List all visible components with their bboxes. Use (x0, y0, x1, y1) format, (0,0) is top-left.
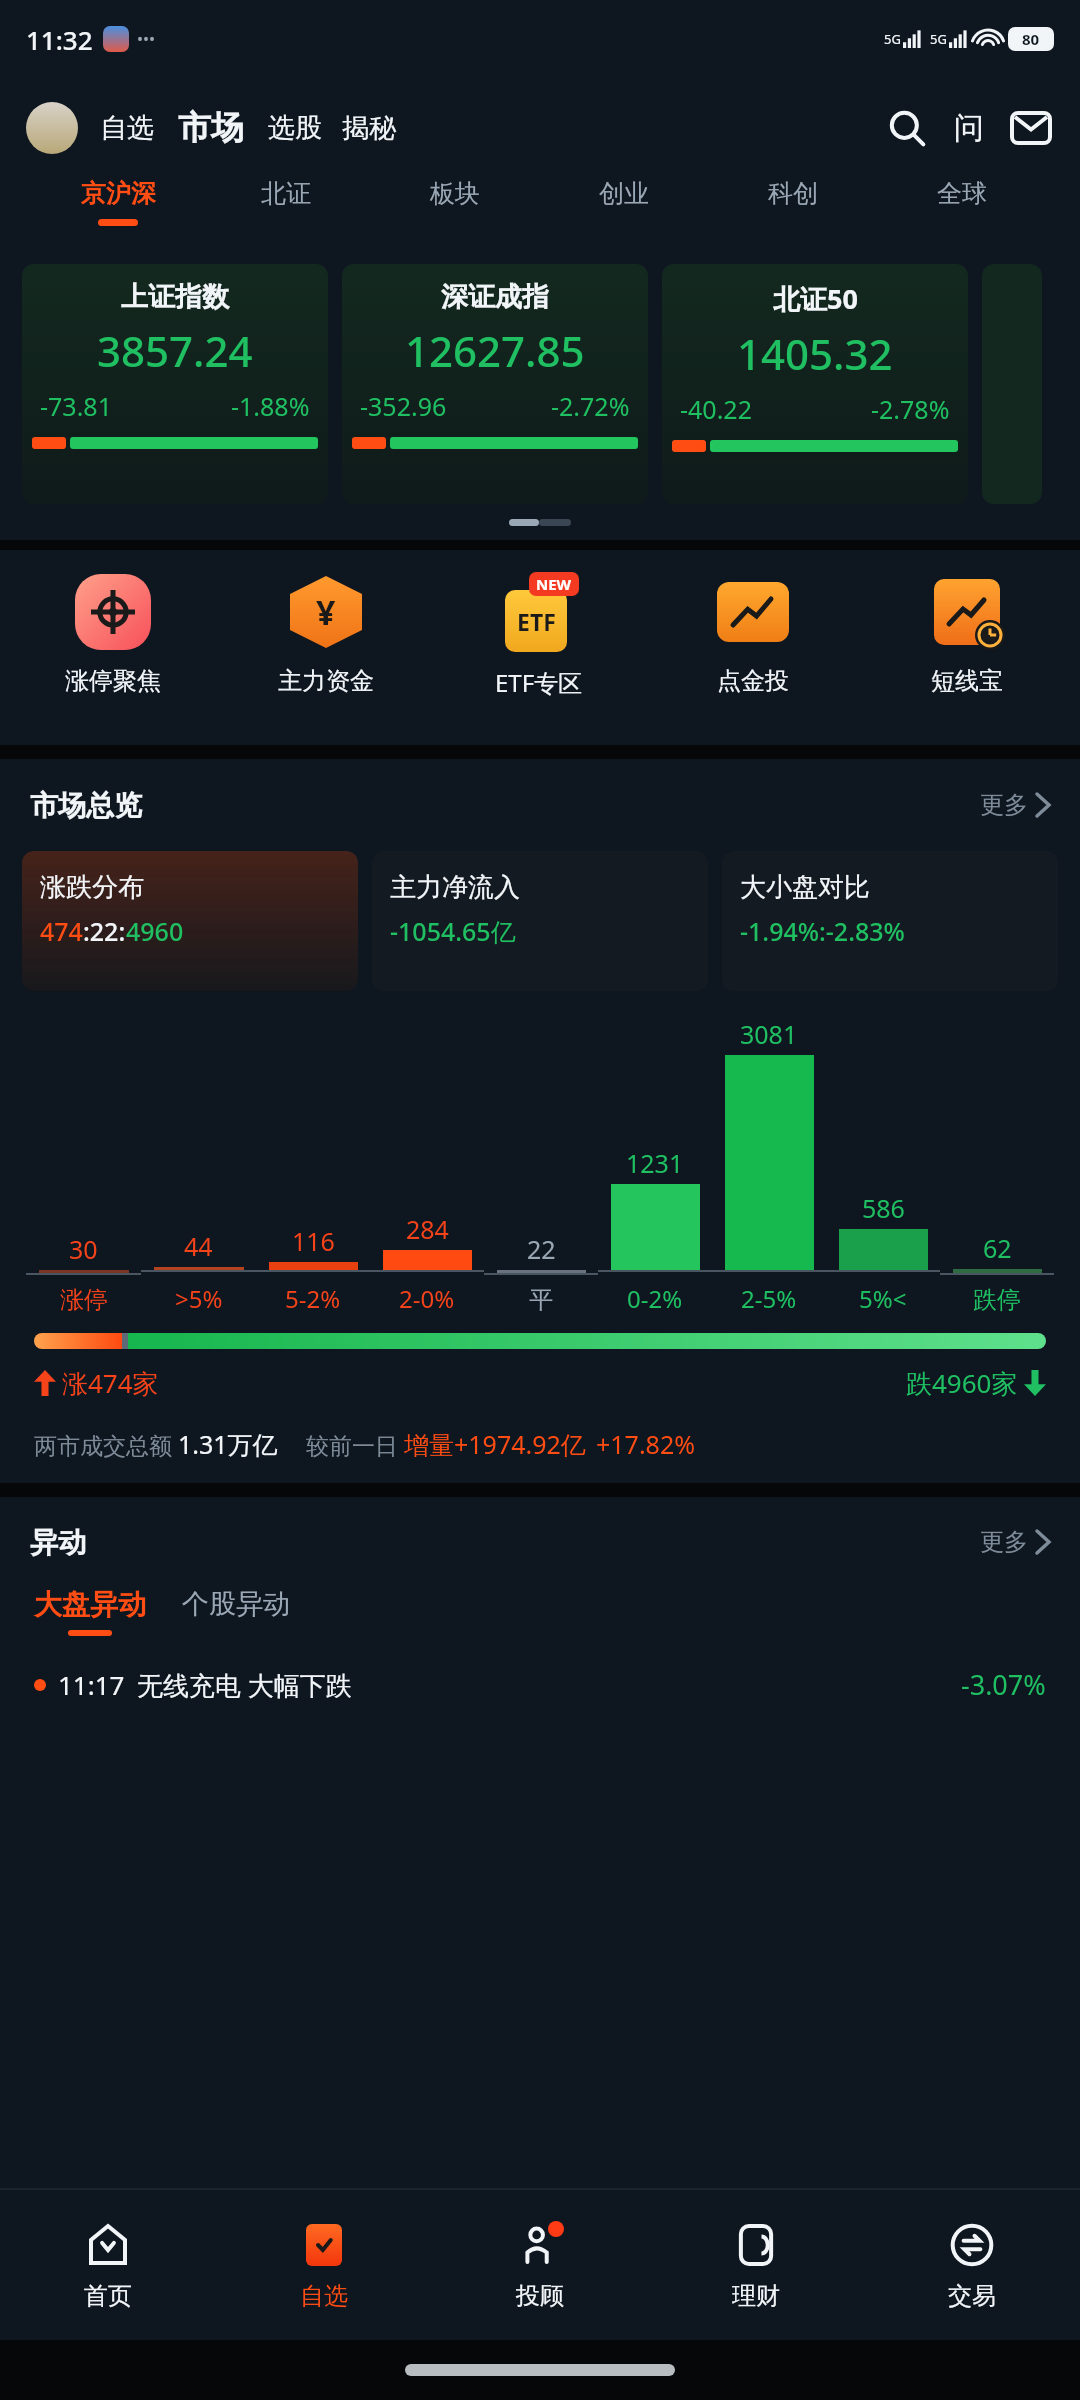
button[interactable]: 11:17 (34, 1666, 1046, 1703)
staticText: ••• (137, 28, 156, 50)
staticText: 首页 (84, 2281, 132, 2311)
button[interactable]: ¥ (219, 572, 432, 696)
staticText: 较前一日 (306, 1429, 404, 1460)
staticText: 两市成交总额 (34, 1429, 178, 1460)
staticText: 北证 (261, 178, 311, 209)
staticText: 284 (406, 1212, 449, 1246)
staticText: 1405.32 (737, 325, 893, 382)
button[interactable]: 科创 (708, 178, 877, 219)
staticText: NEW (536, 574, 572, 594)
staticText: 跌停 (973, 1285, 1021, 1315)
staticText: 主力净流入 (390, 871, 520, 904)
staticText: 大盘异动 (34, 1587, 146, 1622)
staticText: 涨停 (60, 1285, 108, 1315)
staticText: 11:32 (26, 22, 93, 57)
staticText: 586 (862, 1191, 905, 1225)
staticText: 4960 (126, 914, 184, 948)
button[interactable]: 创业 (539, 178, 708, 219)
staticText: 理财 (732, 2281, 780, 2311)
staticText: 异动 (30, 1525, 86, 1560)
staticText: 1231 (626, 1146, 684, 1180)
button[interactable]: 揭秘 (342, 111, 396, 145)
staticText: 自选 (100, 111, 154, 145)
button[interactable]: 自选 (100, 111, 154, 145)
button[interactable]: 投顾 (432, 2190, 648, 2340)
staticText: -2.78% (871, 392, 950, 426)
staticText: 主力资金 (278, 666, 374, 696)
button[interactable]: 大小盘对比 (722, 851, 1058, 991)
button[interactable]: 深证成指 (342, 264, 648, 504)
button[interactable]: 涨停聚焦 (6, 572, 219, 696)
staticText: ETF (517, 606, 556, 637)
staticText: 3081 (740, 1017, 798, 1051)
staticText: 跌4960家 (906, 1365, 1018, 1401)
button[interactable]: 市场总览 (30, 759, 1050, 851)
staticText: 2-0% (399, 1282, 455, 1315)
staticText: 点金投 (717, 666, 789, 696)
staticText: 大小盘对比 (740, 871, 870, 904)
staticText: 平 (529, 1285, 553, 1315)
staticText: 12627.85 (405, 322, 585, 379)
staticText: 5G (930, 30, 947, 48)
button[interactable]: 短线宝 (860, 572, 1074, 696)
button[interactable]: 板块 (370, 178, 539, 219)
staticText: 更多 (980, 790, 1028, 820)
staticText: 创业 (599, 178, 649, 209)
button[interactable]: 点金投 (646, 572, 860, 696)
button[interactable]: ETF (432, 572, 646, 699)
staticText: 揭秘 (342, 111, 396, 145)
button[interactable]: 异动 (30, 1497, 1050, 1587)
staticText: 更多 (980, 1527, 1028, 1557)
staticText: 5%< (859, 1282, 907, 1315)
button[interactable]: 主力净流入 (372, 851, 708, 991)
staticText: 投顾 (516, 2281, 564, 2311)
button[interactable]: Mail (1008, 105, 1054, 151)
button[interactable]: 选股 (268, 111, 322, 145)
button[interactable]: Search (884, 105, 930, 151)
staticText: ETF专区 (495, 666, 583, 699)
button[interactable]: 北证 (202, 178, 370, 219)
staticText: 交易 (948, 2281, 996, 2311)
staticText: -3.07% (961, 1666, 1046, 1703)
button[interactable]: 北证50 (662, 264, 968, 504)
staticText: 涨跌分布 (40, 871, 144, 904)
button[interactable]: 首页 (0, 2190, 216, 2340)
staticText: 11:17 (58, 1667, 125, 1702)
button[interactable]: 自选 (216, 2190, 432, 2340)
staticText: 自选 (300, 2281, 348, 2311)
staticText: -352.96 (360, 389, 447, 423)
staticText: 44 (184, 1229, 213, 1263)
button[interactable]: 市场 (178, 107, 244, 149)
staticText: 474 (40, 914, 83, 948)
staticText: -1.88% (231, 389, 310, 423)
staticText: 80 (1022, 29, 1040, 49)
staticText: 5G (884, 30, 901, 48)
button[interactable]: 个股异动 (182, 1587, 290, 1621)
button[interactable]: 京沪深 (34, 178, 202, 226)
button[interactable]: 交易 (864, 2190, 1080, 2340)
staticText: 涨474家 (62, 1365, 159, 1401)
staticText: 涨停聚焦 (65, 666, 161, 696)
button[interactable]: 上证指数 (22, 264, 328, 504)
staticText: +17.82% (596, 1427, 695, 1461)
button[interactable]: 涨跌分布 (22, 851, 358, 991)
staticText: 短线宝 (931, 666, 1003, 696)
staticText: 深证成指 (441, 280, 549, 314)
button[interactable]: 大盘异动 (34, 1587, 146, 1636)
button[interactable]: 问 (946, 105, 992, 151)
button[interactable]: 全球 (877, 178, 1046, 219)
staticText: -2.72% (551, 389, 630, 423)
staticText: 个股异动 (182, 1587, 290, 1621)
staticText: 问 (954, 109, 984, 147)
staticText: 板块 (430, 178, 480, 209)
staticText: 116 (292, 1224, 335, 1258)
staticText: -40.22 (680, 392, 752, 426)
staticText: 62 (983, 1231, 1012, 1265)
staticText: 30 (69, 1232, 98, 1266)
staticText: 3857.24 (97, 322, 253, 379)
button[interactable]: Profile (26, 102, 78, 154)
staticText: 5-2% (285, 1282, 341, 1315)
staticText: 上证指数 (121, 280, 229, 314)
staticText: 增量+1974.92亿 (404, 1427, 586, 1461)
button[interactable]: 理财 (648, 2190, 864, 2340)
